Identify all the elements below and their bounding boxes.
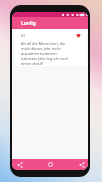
button[interactable]: Share xyxy=(13,159,27,170)
staticText: Lovlig xyxy=(21,20,36,27)
staticText: An all die Menschen, die mich dieses Jah… xyxy=(21,41,69,66)
staticText: #9 xyxy=(21,33,26,38)
button[interactable]: #9 xyxy=(15,30,86,66)
button[interactable]: Share link xyxy=(75,159,88,170)
button[interactable]: Lovlig xyxy=(12,17,88,29)
button[interactable]: Next joke xyxy=(43,159,57,170)
button[interactable]: Favourite xyxy=(74,31,83,40)
